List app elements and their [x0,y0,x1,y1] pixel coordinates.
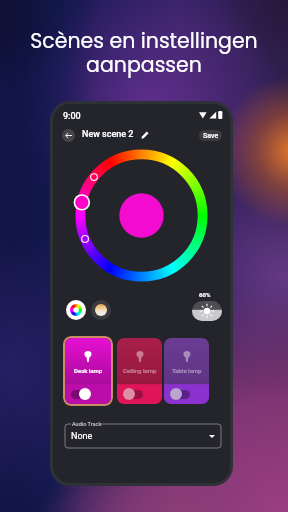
button[interactable]: Brightness [192,301,222,321]
button[interactable]: Back [62,129,75,142]
button[interactable]: Desk lamp [65,338,111,404]
staticText: None [71,431,93,442]
button[interactable]: Colour mode [66,300,86,320]
staticText: 9:00 [63,111,81,122]
button[interactable]: White mode [91,300,111,320]
button[interactable]: Rename [141,131,149,139]
staticText: 60% [199,291,211,298]
button[interactable]: Ceiling lamp [117,338,162,404]
button[interactable]: Table lamp toggle [170,388,190,400]
staticText: Scènes en instellingen aanpassen [30,26,258,79]
button[interactable]: Save [199,130,222,141]
button[interactable]: Desk lamp toggle [71,388,91,400]
button[interactable]: Ceiling lamp toggle [123,388,143,400]
staticText: Ceiling lamp [123,367,157,374]
staticText: Save [203,132,219,140]
staticText: Table lamp [172,367,202,374]
staticText: Audio Track [72,421,102,427]
button[interactable]: Table lamp [164,338,209,404]
button[interactable]: New scene 2 [82,129,134,140]
staticText: Desk lamp [74,367,103,374]
